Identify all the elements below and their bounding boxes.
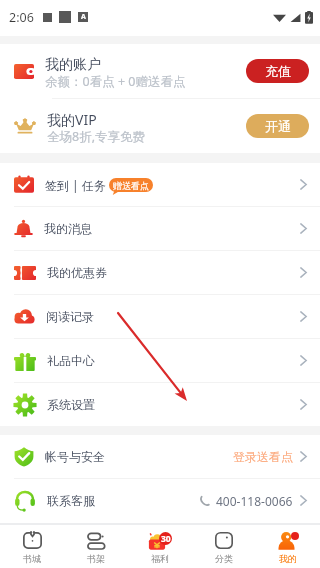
button[interactable]: 书城 (0, 525, 64, 568)
button[interactable]: 我的优惠券 (0, 251, 320, 294)
button[interactable]: 系统设置 (0, 383, 320, 426)
staticText: 系统设置 (47, 397, 95, 412)
staticText: 签到 | 任务 (45, 177, 106, 193)
staticText: 2:06 (9, 9, 34, 26)
button[interactable]: 30 (128, 525, 192, 568)
staticText: 礼品中心 (47, 353, 95, 368)
staticText: 我的 (279, 553, 297, 564)
staticText: 帐号与安全 (45, 449, 105, 464)
staticText: 赠送看点 (113, 180, 149, 191)
staticText: 全场8折,专享免费 (47, 128, 146, 145)
staticText: 分类 (215, 553, 233, 564)
staticText: 我的优惠券 (47, 265, 107, 280)
button[interactable]: 礼品中心 (0, 339, 320, 382)
staticText: 400-118-0066 (216, 493, 293, 509)
staticText: 书架 (87, 553, 105, 564)
button[interactable]: 帐号与安全 (0, 435, 320, 478)
staticText: 余额：0看点 + 0赠送看点 (45, 73, 186, 90)
staticText: A (81, 12, 86, 22)
staticText: 书城 (23, 553, 41, 564)
staticText: 阅读记录 (46, 309, 94, 324)
button[interactable]: 联系客服 (0, 479, 320, 522)
button[interactable]: 我的VIP (0, 99, 320, 153)
staticText: 我的消息 (44, 221, 92, 236)
staticText: 我的VIP (47, 110, 97, 129)
button[interactable]: 分类 (192, 525, 256, 568)
button[interactable]: 阅读记录 (0, 295, 320, 338)
staticText: 30 (161, 533, 171, 545)
button[interactable]: 开通 (246, 114, 309, 138)
button[interactable]: 书架 (64, 525, 128, 568)
button[interactable]: 签到 | 任务 (0, 163, 320, 206)
button[interactable]: 我的 (256, 525, 320, 568)
staticText: 充值 (265, 63, 291, 79)
button[interactable]: 充值 (246, 59, 309, 83)
staticText: 福利 (151, 553, 169, 564)
staticText: 联系客服 (47, 493, 95, 508)
staticText: 我的账户 (45, 56, 101, 74)
button[interactable]: 我的账户 (0, 44, 320, 98)
button[interactable]: 我的消息 (0, 207, 320, 250)
staticText: 登录送看点 (233, 449, 293, 464)
staticText: 开通 (265, 118, 291, 134)
